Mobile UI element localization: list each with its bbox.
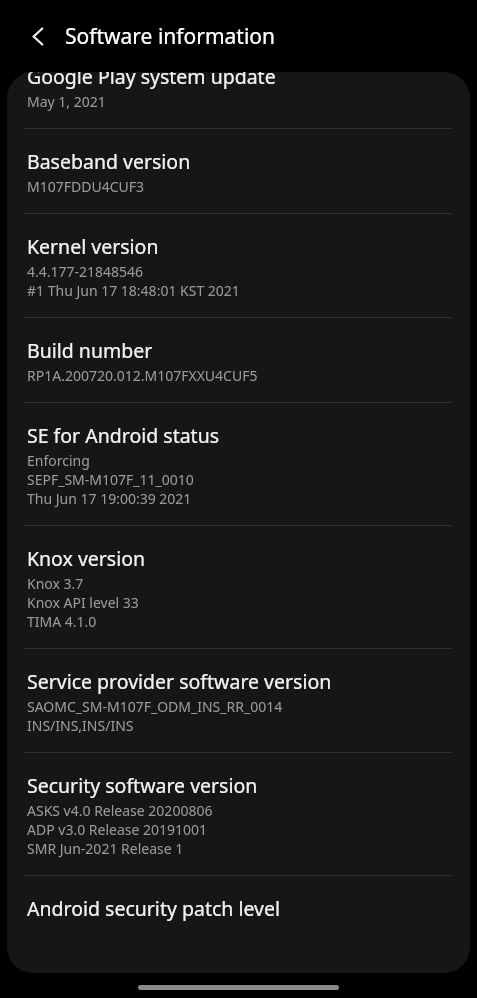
button[interactable]: Back [16,14,60,58]
staticText: INS/INS,INS/INS [27,716,134,735]
staticText: Baseband version [27,148,191,175]
button[interactable]: Build number [7,318,470,402]
staticText: Thu Jun 17 19:00:39 2021 [27,489,192,508]
staticText: ADP v3.0 Release 20191001 [27,820,208,839]
button[interactable]: Google Play system update [7,72,470,128]
staticText: SMR Jun-2021 Release 1 [27,839,184,858]
staticText: Enforcing [27,451,90,470]
staticText: Software information [65,22,275,51]
button[interactable]: Kernel version [7,214,470,317]
staticText: SE for Android status [27,422,220,449]
staticText: May 1, 2021 [27,92,106,111]
staticText: ASKS v4.0 Release 20200806 [27,801,213,820]
button[interactable]: Service provider software version [7,649,470,752]
staticText: Google Play system update [27,72,276,90]
button[interactable]: SE for Android status [7,403,470,525]
staticText: 4.4.177-21848546 [27,262,144,281]
staticText: Kernel version [27,233,159,260]
button[interactable]: Security software version [7,753,470,875]
staticText: Android security patch level [27,895,280,922]
staticText: #1 Thu Jun 17 18:48:01 KST 2021 [27,281,240,300]
staticText: Knox 3.7 [27,574,84,593]
staticText: SAOMC_SM-M107F_ODM_INS_RR_0014 [27,697,283,716]
button[interactable]: Knox version [7,526,470,648]
staticText: RP1A.200720.012.M107FXXU4CUF5 [27,366,258,385]
staticText: Knox version [27,545,146,572]
staticText: Build number [27,337,153,364]
staticText: Security software version [27,772,258,799]
button[interactable]: Android security patch level [7,876,470,945]
staticText: Service provider software version [27,668,332,695]
staticText: SEPF_SM-M107F_11_0010 [27,470,194,489]
staticText: M107FDDU4CUF3 [27,177,145,196]
button[interactable]: Baseband version [7,129,470,213]
staticText: Knox API level 33 [27,593,139,612]
staticText: TIMA 4.1.0 [27,612,97,631]
